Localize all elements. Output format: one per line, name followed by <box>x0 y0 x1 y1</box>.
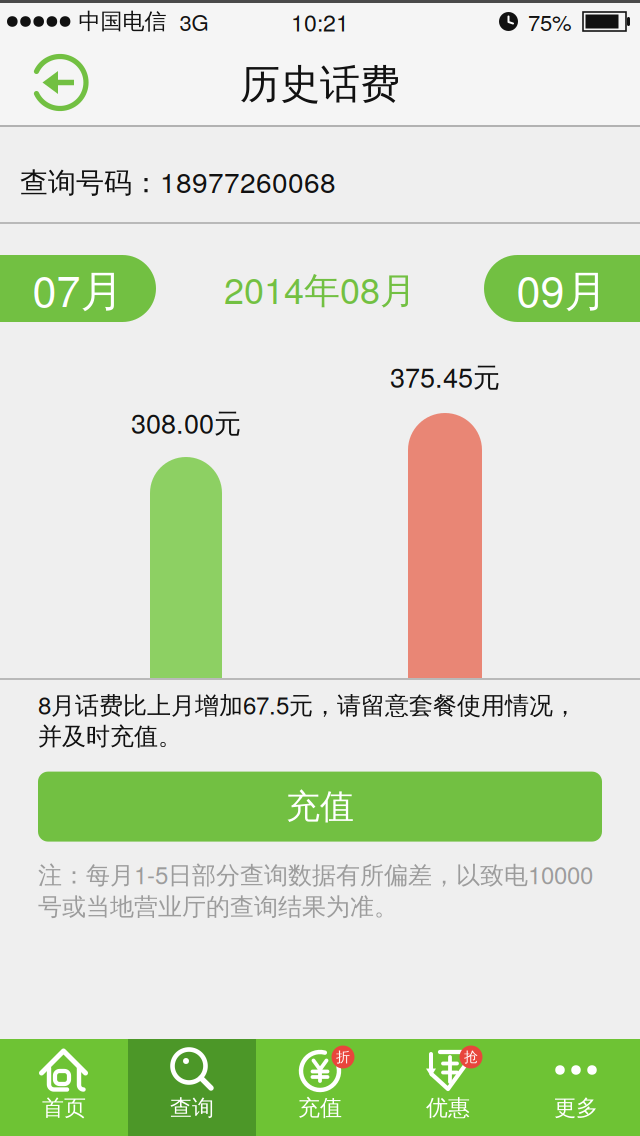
button[interactable]: 07月 <box>0 255 156 322</box>
staticText: 更多 <box>554 1094 598 1122</box>
staticText: 375.45元 <box>390 357 500 395</box>
staticText: 10:21 <box>291 5 349 38</box>
staticText: 充值 <box>298 1094 342 1122</box>
staticText: 历史话费 <box>240 59 400 110</box>
staticText: 查询号码：18977260068 <box>20 161 336 201</box>
staticText: 3G <box>179 6 208 37</box>
staticText: 抢 <box>464 1048 478 1066</box>
staticText: 308.00元 <box>131 403 241 441</box>
button[interactable]: 优惠 <box>384 1039 512 1136</box>
staticText: 中国电信 <box>78 8 166 35</box>
staticText: 09月 <box>516 258 607 319</box>
staticText: 首页 <box>42 1094 86 1122</box>
button[interactable]: 首页 <box>0 1039 128 1136</box>
staticText: 查询 <box>170 1094 214 1122</box>
button[interactable]: 09月 <box>484 255 640 322</box>
button[interactable]: 充值 <box>38 772 602 842</box>
staticText: 2014年08月 <box>224 263 416 314</box>
staticText: 充值 <box>286 785 354 828</box>
staticText: 优惠 <box>426 1094 470 1122</box>
staticText: 8月话费比上月增加67.5元，请留意套餐使用情况， <box>38 687 577 721</box>
staticText: 07月 <box>32 258 123 319</box>
staticText: 并及时充值。 <box>38 721 182 752</box>
staticText: 折 <box>336 1048 350 1066</box>
button[interactable]: 更多 <box>512 1039 640 1136</box>
button[interactable]: 返回 <box>0 53 89 111</box>
button[interactable]: 充值 <box>256 1039 384 1136</box>
staticText: 注：每月1-5日部分查询数据有所偏差，以致电10000 <box>38 857 593 891</box>
staticText: 号或当地营业厅的查询结果为准。 <box>38 892 398 922</box>
staticText: 75% <box>528 6 572 37</box>
button[interactable]: 查询 <box>128 1039 256 1136</box>
